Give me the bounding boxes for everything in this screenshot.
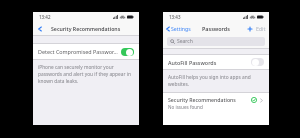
button[interactable]: Settings: [165, 25, 191, 32]
staticText: 13:43: [169, 14, 181, 20]
staticText: Settings: [171, 25, 191, 32]
staticText: iPhone can securely monitor your passwor…: [38, 64, 134, 85]
staticText: 13:42: [39, 14, 51, 20]
button[interactable]: Toggle on: [121, 48, 134, 56]
button[interactable]: Detect Compromised Passwor…: [33, 44, 139, 59]
staticText: Security Recommendations: [51, 25, 121, 32]
button[interactable]: Security Recommendations: [163, 93, 269, 125]
staticText: AutoFill Passwords: [168, 59, 251, 66]
staticText: Passwords: [202, 25, 230, 32]
staticText: AutoFill helps you sign into apps and we…: [168, 74, 264, 88]
button[interactable]: Search: [167, 37, 265, 46]
staticText: Security Recommendations: [168, 96, 236, 103]
staticText: Search: [177, 38, 193, 45]
staticText: Detect Compromised Passwor…: [38, 48, 119, 55]
button[interactable]: Back: [33, 22, 139, 35]
button[interactable]: AutoFill Passwords: [163, 55, 269, 69]
button[interactable]: Add password: [246, 25, 253, 32]
staticText: No issues found: [168, 104, 203, 110]
button[interactable]: Back: [36, 25, 43, 32]
button[interactable]: Edit: [256, 25, 266, 32]
staticText: Edit: [256, 25, 266, 32]
button[interactable]: Toggle off: [251, 58, 264, 66]
